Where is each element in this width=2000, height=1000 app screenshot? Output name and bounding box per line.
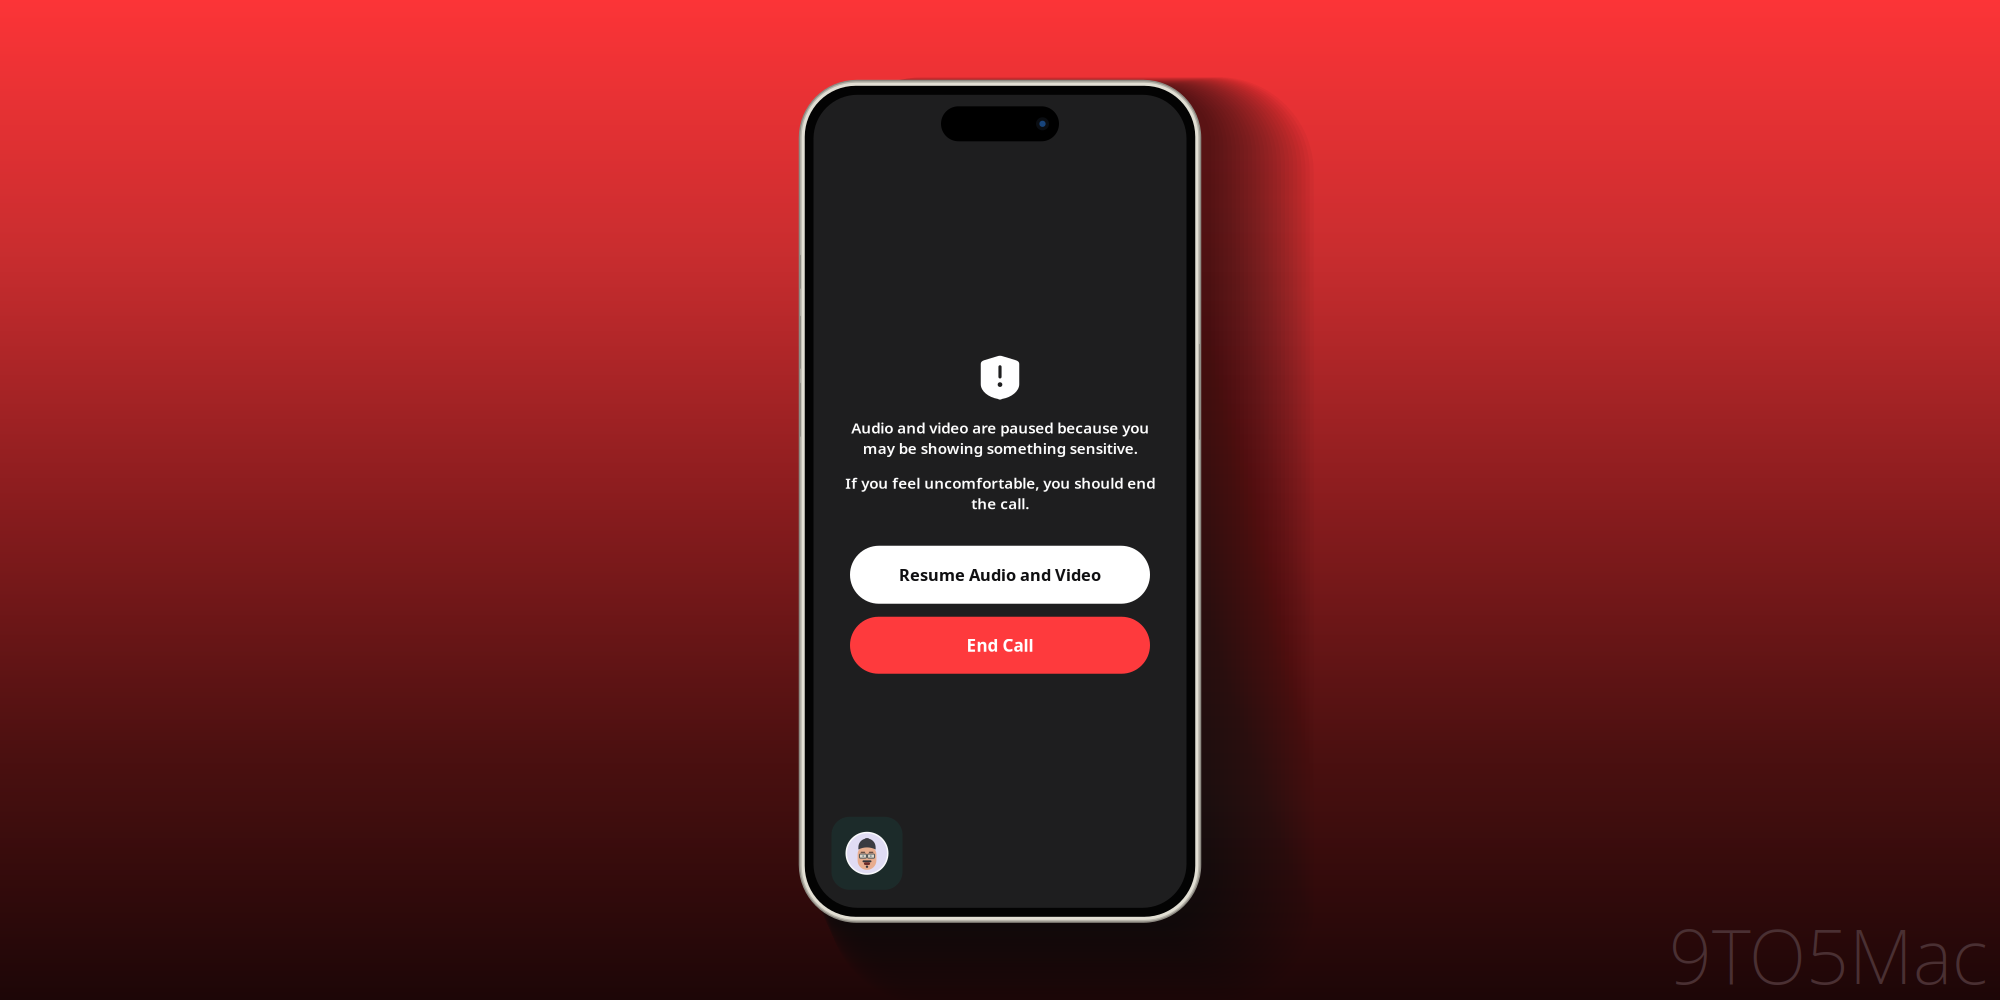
- button[interactable]: Self view: [831, 817, 902, 890]
- button[interactable]: End Call: [850, 617, 1150, 674]
- staticText: End Call: [966, 634, 1033, 657]
- staticText: If you feel uncomfortable, you should en…: [845, 472, 1155, 514]
- staticText: 9TO5Mac: [1669, 904, 1988, 1000]
- staticText: Resume Audio and Video: [899, 564, 1101, 586]
- button[interactable]: Resume Audio and Video: [850, 546, 1150, 604]
- staticText: Audio and video are paused because you m…: [851, 417, 1149, 458]
